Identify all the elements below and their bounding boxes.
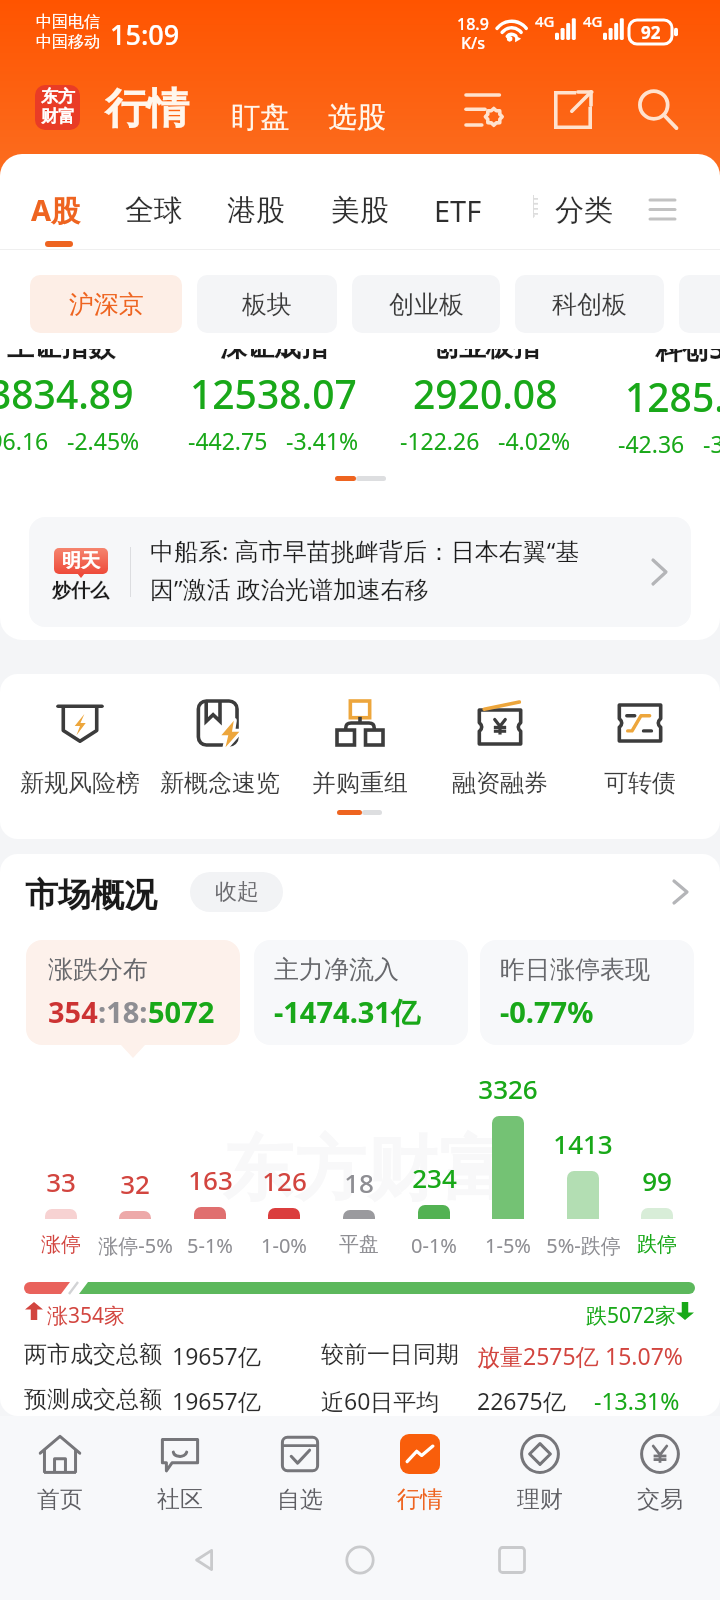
button[interactable]: Filter: [458, 83, 512, 137]
button[interactable]: 盯盘: [231, 99, 289, 136]
staticText: 东方财富: [222, 1126, 510, 1214]
staticText: -42.36: [618, 428, 685, 459]
button[interactable]: 行情: [105, 83, 189, 136]
staticText: 创业板: [389, 289, 464, 320]
staticText: 分类: [555, 192, 613, 229]
button[interactable]: 创业板: [352, 275, 500, 333]
button[interactable]: 科创50: [591, 330, 720, 459]
button[interactable]: Market overview detail: [672, 878, 696, 908]
button[interactable]: 主力净流入: [274, 940, 468, 1045]
staticText: 3834.89: [0, 367, 134, 420]
staticText: 163: [188, 1162, 233, 1197]
button[interactable]: 全球: [125, 184, 183, 236]
staticText: 财富: [41, 106, 75, 127]
button[interactable]: 创业板指: [379, 330, 591, 456]
staticText: 社区: [157, 1485, 203, 1514]
staticText: 32: [120, 1166, 150, 1201]
staticText: 预测成交总额: [24, 1385, 162, 1414]
staticText: 15.07%: [605, 1340, 683, 1371]
staticText: 跌5072家: [586, 1301, 677, 1330]
button[interactable]: 美股: [331, 184, 389, 236]
staticText: 涨停-5%: [98, 1232, 173, 1259]
button[interactable]: 分类: [555, 184, 613, 236]
staticText: 市场概况: [25, 874, 157, 916]
button[interactable]: A股: [31, 184, 81, 236]
button[interactable]: Search: [631, 83, 685, 137]
staticText: 创业板指: [432, 330, 540, 364]
staticText: 炒什么: [52, 579, 109, 603]
button[interactable]: ETF: [434, 184, 482, 236]
staticText: -1474.31亿: [274, 992, 420, 1032]
staticText: 板块: [242, 289, 292, 320]
staticText: 上证指数: [7, 330, 115, 364]
staticText: 较前一日同期: [321, 1340, 459, 1369]
staticText: 理财: [517, 1485, 563, 1514]
staticText: -4.02%: [498, 425, 571, 456]
staticText: 因”激活 政治光谱加速右移: [150, 572, 429, 605]
staticText: 全球: [125, 192, 183, 229]
button[interactable]: 涨跌分布: [48, 940, 240, 1045]
button[interactable]: 收起: [190, 872, 283, 912]
staticText: 港股: [227, 192, 285, 229]
button[interactable]: More tabs: [650, 190, 694, 228]
staticText: 4G: [535, 11, 555, 31]
staticText: 自选: [277, 1485, 323, 1514]
button[interactable]: 新规风险榜: [10, 700, 150, 798]
staticText: 4G: [583, 11, 603, 31]
button[interactable]: 深证成指: [167, 330, 379, 456]
button[interactable]: 东方: [35, 85, 80, 130]
staticText: 中国移动: [36, 32, 100, 52]
staticText: 12538.07: [190, 367, 357, 420]
button[interactable]: 昨日涨停表现: [500, 940, 694, 1045]
button[interactable]: 新概念速览: [150, 700, 290, 798]
staticText: -13.31%: [594, 1385, 680, 1416]
button[interactable]: 自选: [240, 1416, 360, 1520]
staticText: 收起: [215, 878, 259, 906]
button[interactable]: 选股: [328, 99, 386, 136]
staticText: 其: [533, 195, 538, 219]
staticText: -442.75: [188, 425, 268, 456]
staticText: 354: [48, 992, 98, 1031]
staticText: 两市成交总额: [24, 1340, 162, 1369]
staticText: ETF: [434, 191, 482, 230]
button[interactable]: Back: [155, 1520, 255, 1600]
button[interactable]: 行情: [360, 1416, 480, 1520]
staticText: 1-0%: [261, 1232, 307, 1259]
button[interactable]: 融资融券: [430, 700, 570, 798]
button[interactable]: 明天: [29, 517, 691, 627]
staticText: -3.19%: [703, 428, 720, 459]
button[interactable]: 首页: [0, 1416, 120, 1520]
button[interactable]: 科创板: [515, 275, 664, 333]
staticText: 5-1%: [187, 1232, 233, 1259]
button[interactable]: 板块: [197, 275, 337, 333]
button[interactable]: Recents: [462, 1520, 562, 1600]
staticText: -122.26: [400, 425, 480, 456]
staticText: 科创50: [655, 330, 720, 367]
button[interactable]: Share: [546, 83, 600, 137]
staticText: 中国电信: [36, 12, 100, 32]
button[interactable]: 理财: [480, 1416, 600, 1520]
staticText: 并购重组: [312, 768, 408, 798]
button[interactable]: Home: [310, 1520, 410, 1600]
staticText: :18:: [98, 992, 148, 1031]
button[interactable]: 可转债: [570, 700, 710, 798]
staticText: 新规风险榜: [20, 768, 140, 798]
staticText: 2920.08: [413, 367, 558, 420]
button[interactable]: 上证指数: [0, 330, 167, 456]
button[interactable]: 港股: [227, 184, 285, 236]
staticText: 1-5%: [485, 1232, 531, 1259]
button[interactable]: 社区: [120, 1416, 240, 1520]
staticText: 深证成指: [220, 330, 328, 364]
staticText: -2.45%: [67, 425, 140, 456]
staticText: 新概念速览: [160, 768, 280, 798]
button[interactable]: 并购重组: [290, 700, 430, 798]
button[interactable]: 沪深京: [30, 275, 182, 333]
staticText: -0.77%: [500, 992, 594, 1031]
button[interactable]: 市场概况: [25, 874, 157, 916]
staticText: 放量2575亿: [477, 1340, 599, 1371]
staticText: -3.41%: [286, 425, 359, 456]
staticText: 126: [262, 1163, 307, 1198]
button[interactable]: 交易: [600, 1416, 720, 1520]
staticText: 3326: [478, 1071, 538, 1106]
